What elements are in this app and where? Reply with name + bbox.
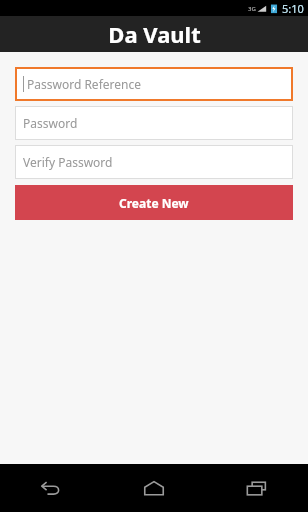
button[interactable]: Password Reference	[15, 67, 293, 101]
button[interactable]: Recent apps	[205, 464, 308, 512]
button[interactable]: Verify Password	[15, 145, 293, 179]
staticText: Verify Password	[23, 154, 113, 170]
button[interactable]: Password	[15, 106, 293, 140]
staticText: Password	[23, 115, 78, 131]
staticText: 5:10	[282, 1, 304, 16]
staticText: Password Reference	[27, 76, 141, 92]
staticText: 3G	[248, 5, 256, 13]
staticText: Da Vault	[108, 19, 201, 49]
button[interactable]: Back	[0, 464, 102, 512]
button[interactable]: Create New	[15, 185, 293, 220]
button[interactable]: Home	[102, 464, 205, 512]
staticText: Create New	[119, 195, 189, 211]
